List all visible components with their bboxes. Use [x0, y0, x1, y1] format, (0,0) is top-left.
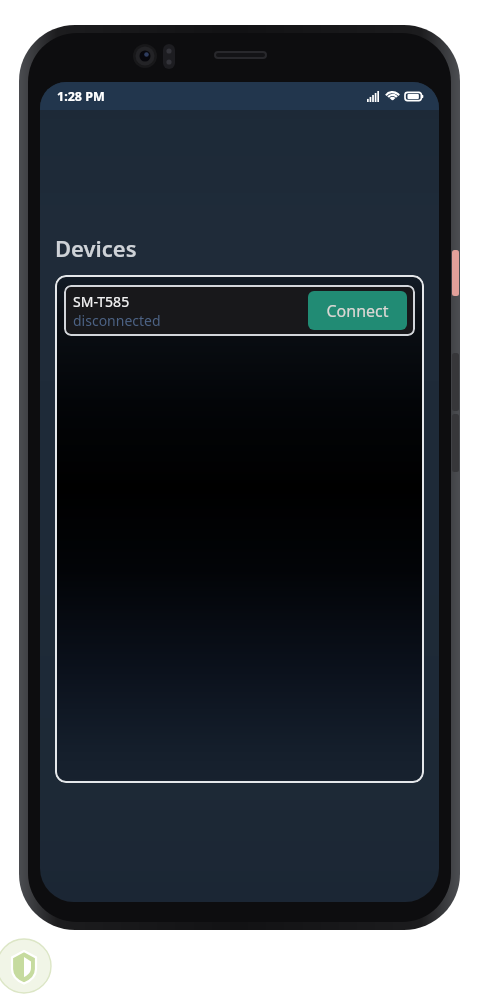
staticText: Devices: [55, 233, 137, 263]
staticText: disconnected: [73, 311, 161, 330]
button[interactable]: Connect: [308, 291, 407, 330]
button[interactable]: SM-T585: [64, 285, 415, 336]
staticText: 1:28 PM: [57, 88, 105, 105]
staticText: Connect: [326, 300, 389, 322]
staticText: SM-T585: [73, 292, 130, 311]
